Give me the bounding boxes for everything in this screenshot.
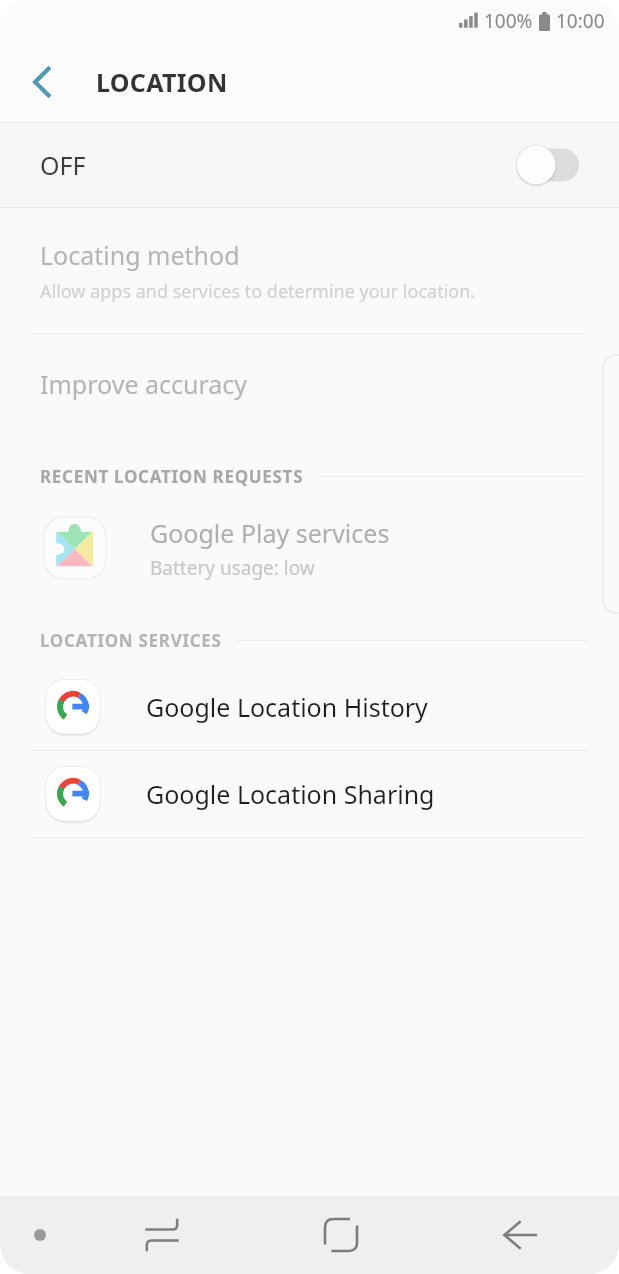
button[interactable]: Location off	[515, 144, 583, 186]
staticText: Google Location Sharing	[146, 777, 435, 811]
staticText: LOCATION SERVICES	[40, 629, 222, 652]
button[interactable]: Locating method	[0, 208, 619, 333]
button[interactable]: OFF	[0, 123, 619, 207]
button[interactable]: Google Play services	[0, 500, 619, 596]
button[interactable]: Google Location History	[0, 664, 619, 750]
staticText: LOCATION	[96, 65, 228, 99]
staticText: Google Play services	[150, 516, 390, 550]
staticText: Google Location History	[146, 690, 428, 724]
staticText: Battery usage: low	[150, 555, 315, 581]
button[interactable]: Google Location Sharing	[0, 751, 619, 837]
staticText: Allow apps and services to determine you…	[40, 279, 476, 304]
staticText: OFF	[40, 148, 86, 182]
staticText: Improve accuracy	[40, 367, 248, 401]
button[interactable]: Home	[251, 1196, 430, 1274]
staticText: Locating method	[40, 238, 240, 272]
button[interactable]: Back	[430, 1196, 609, 1274]
button[interactable]: Navigate up	[14, 54, 70, 110]
staticText: 10:00	[556, 8, 605, 34]
button[interactable]: Recent apps	[72, 1196, 251, 1274]
staticText: 100%	[484, 8, 533, 34]
button[interactable]: Hide navigation bar	[26, 1221, 54, 1249]
staticText: RECENT LOCATION REQUESTS	[40, 465, 304, 488]
button[interactable]: Improve accuracy	[0, 334, 619, 434]
